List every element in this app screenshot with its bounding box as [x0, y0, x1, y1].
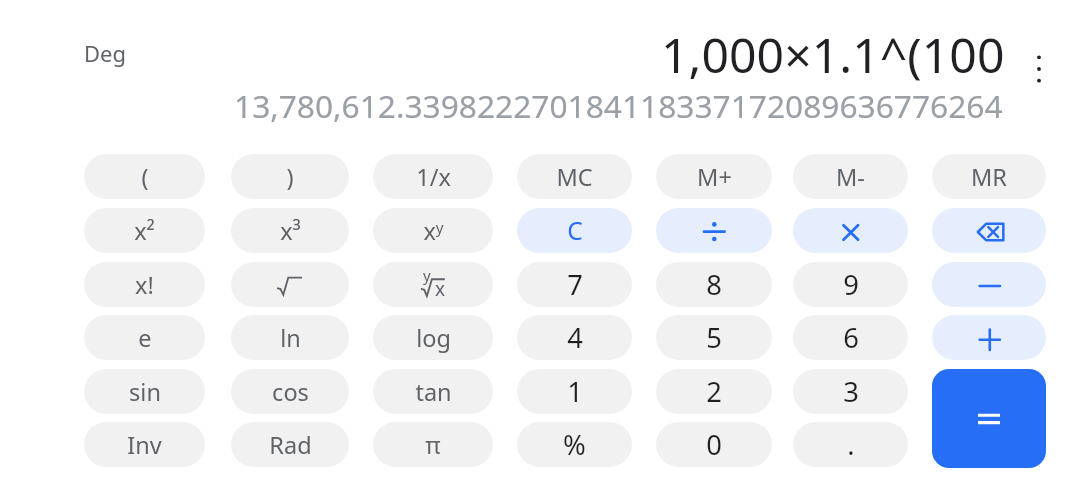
staticText: Rad — [269, 429, 312, 461]
button[interactable]: % — [517, 422, 632, 467]
staticText: . — [847, 426, 855, 463]
staticText: 1 — [567, 373, 583, 410]
staticText: ( — [141, 161, 149, 193]
staticText: M+ — [697, 161, 732, 193]
staticText: sin — [129, 376, 161, 408]
staticText: e — [138, 322, 152, 354]
staticText: 2 — [706, 373, 722, 410]
staticText: ) — [286, 161, 294, 193]
button[interactable]: 2 — [656, 369, 772, 414]
button[interactable]: 5 — [656, 315, 772, 360]
button[interactable]: C — [517, 208, 632, 253]
staticText: 5 — [706, 319, 722, 356]
button[interactable]: ln — [231, 315, 349, 360]
button[interactable]: M- — [793, 154, 908, 199]
button[interactable]: log — [373, 315, 493, 360]
staticText: 13,780,612.33982227018411833717208963677… — [234, 84, 1003, 127]
button[interactable]: MC — [517, 154, 632, 199]
button[interactable]: e — [84, 315, 205, 360]
button[interactable]: Divide — [656, 208, 772, 253]
staticText: x³ — [280, 215, 301, 247]
staticText: x! — [135, 269, 154, 301]
staticText: 8 — [706, 266, 722, 303]
staticText: 1/x — [416, 161, 451, 193]
button[interactable]: Rad — [231, 422, 349, 467]
button[interactable]: 1/x — [373, 154, 493, 199]
staticText: log — [416, 322, 451, 354]
staticText: x — [435, 276, 446, 302]
staticText: π — [425, 429, 441, 461]
button[interactable]: 9 — [793, 262, 908, 307]
button[interactable]: 7 — [517, 262, 632, 307]
button[interactable]: x! — [84, 262, 205, 307]
staticText: 6 — [843, 319, 859, 356]
staticText: MC — [556, 161, 593, 193]
staticText: 0 — [706, 426, 722, 463]
button[interactable]: Plus — [932, 315, 1046, 360]
staticText: tan — [415, 376, 452, 408]
button[interactable]: 3 — [793, 369, 908, 414]
staticText: 9 — [843, 266, 859, 303]
button[interactable]: xʸ — [373, 208, 493, 253]
button[interactable]: 1 — [517, 369, 632, 414]
button[interactable]: Deg — [84, 38, 126, 68]
button[interactable]: sin — [84, 369, 205, 414]
staticText: M- — [836, 161, 865, 193]
button[interactable]: cos — [231, 369, 349, 414]
button[interactable]: Equals — [932, 369, 1046, 468]
button[interactable]: 4 — [517, 315, 632, 360]
button[interactable]: 8 — [656, 262, 772, 307]
button[interactable]: M+ — [656, 154, 772, 199]
button[interactable]: MR — [932, 154, 1046, 199]
button[interactable]: More options — [1021, 51, 1057, 87]
staticText: 4 — [567, 319, 583, 356]
staticText: 3 — [843, 373, 859, 410]
button[interactable]: tan — [373, 369, 493, 414]
button[interactable]: Minus — [932, 262, 1046, 307]
button[interactable]: ) — [231, 154, 349, 199]
staticText: C — [567, 214, 583, 248]
staticText: 7 — [567, 266, 583, 303]
staticText: x² — [134, 215, 155, 247]
button[interactable]: Square root — [231, 262, 349, 307]
staticText: y — [423, 265, 431, 285]
button[interactable]: ( — [84, 154, 205, 199]
staticText: cos — [272, 376, 309, 408]
button[interactable]: Backspace — [932, 208, 1046, 253]
button[interactable]: N-th root — [373, 262, 493, 307]
button[interactable]: . — [793, 422, 908, 467]
staticText: 1,000×1.1^(100 — [661, 21, 1005, 87]
button[interactable]: Multiply — [793, 208, 908, 253]
staticText: ln — [280, 322, 301, 354]
staticText: xʸ — [423, 215, 444, 247]
button[interactable]: 6 — [793, 315, 908, 360]
button[interactable]: 0 — [656, 422, 772, 467]
button[interactable]: Inv — [84, 422, 205, 467]
staticText: % — [563, 426, 586, 463]
button[interactable]: π — [373, 422, 493, 467]
staticText: Inv — [127, 429, 162, 461]
button[interactable]: x² — [84, 208, 205, 253]
button[interactable]: x³ — [231, 208, 349, 253]
staticText: MR — [971, 161, 1007, 193]
